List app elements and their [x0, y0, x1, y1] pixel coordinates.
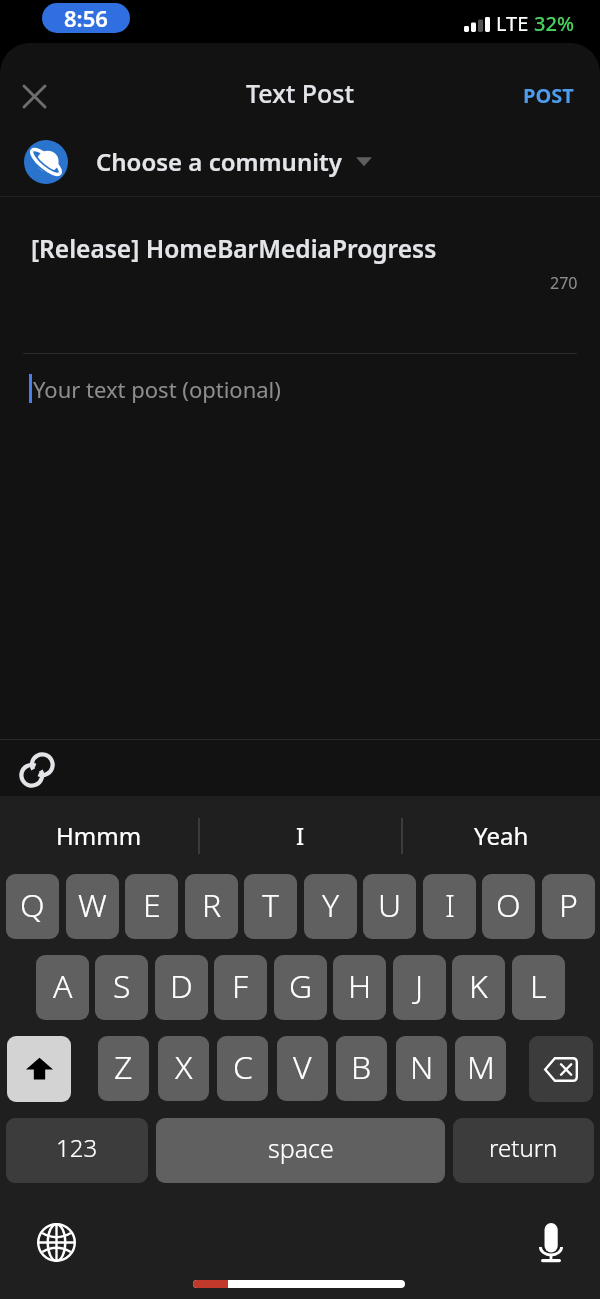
button[interactable]: C — [217, 1036, 268, 1101]
staticText: W — [78, 883, 107, 927]
button[interactable]: A — [36, 955, 89, 1020]
staticText: I — [445, 883, 455, 927]
button[interactable]: G — [274, 955, 327, 1020]
button[interactable]: K — [452, 955, 505, 1020]
staticText: LTE — [496, 10, 529, 37]
button[interactable]: I — [423, 874, 476, 939]
staticText: Z — [114, 1045, 133, 1089]
staticText: M — [467, 1045, 495, 1089]
button[interactable]: Dictation — [528, 1220, 574, 1266]
button[interactable]: X — [158, 1036, 209, 1101]
button[interactable]: Shift — [7, 1036, 71, 1102]
button[interactable]: R — [185, 874, 238, 939]
staticText: T — [262, 883, 279, 927]
button[interactable]: O — [482, 874, 535, 939]
staticText: X — [175, 1045, 193, 1089]
button[interactable]: T — [244, 874, 297, 939]
staticText: V — [293, 1045, 312, 1089]
staticText: H — [348, 964, 372, 1008]
staticText: G — [289, 964, 313, 1008]
button[interactable]: Close — [10, 71, 59, 120]
staticText: [Release] HomeBarMediaProgress — [31, 232, 437, 265]
staticText: I — [296, 819, 305, 852]
staticText: U — [378, 883, 402, 927]
staticText: Yeah — [474, 819, 529, 852]
button[interactable]: F — [214, 955, 267, 1020]
button[interactable]: V — [277, 1036, 328, 1101]
button[interactable]: S — [95, 955, 148, 1020]
button[interactable]: L — [512, 955, 565, 1020]
button[interactable]: Insert link — [15, 748, 59, 792]
staticText: A — [53, 964, 73, 1008]
staticText: space — [268, 1131, 334, 1165]
button[interactable]: 123 — [6, 1118, 148, 1183]
staticText: POST — [523, 82, 574, 109]
button[interactable]: Yeah — [402, 796, 600, 874]
staticText: J — [415, 964, 424, 1008]
staticText: Choose a community — [96, 145, 342, 178]
button[interactable]: W — [66, 874, 119, 939]
staticText: C — [233, 1045, 253, 1089]
button[interactable]: POST — [519, 76, 578, 115]
button[interactable]: P — [542, 874, 595, 939]
staticText: L — [530, 964, 547, 1008]
staticText: 8:56 — [64, 3, 108, 33]
button[interactable]: space — [156, 1118, 445, 1183]
button[interactable]: N — [396, 1036, 447, 1101]
button[interactable]: Q — [6, 874, 59, 939]
button[interactable]: D — [155, 955, 208, 1020]
staticText: S — [113, 964, 131, 1008]
staticText: B — [351, 1045, 372, 1089]
button[interactable]: Change keyboard — [33, 1219, 79, 1265]
button[interactable]: Backspace — [529, 1036, 593, 1102]
staticText: D — [170, 964, 193, 1008]
staticText: R — [202, 883, 222, 927]
button[interactable]: Choose a community — [0, 129, 600, 194]
staticText: O — [496, 883, 521, 927]
staticText: P — [559, 883, 578, 927]
button[interactable]: M — [455, 1036, 506, 1101]
button[interactable]: H — [333, 955, 386, 1020]
button[interactable]: Hmmm — [0, 796, 198, 874]
staticText: 123 — [56, 1131, 98, 1164]
button[interactable]: Z — [98, 1036, 149, 1101]
staticText: Q — [20, 883, 45, 927]
staticText: 270 — [550, 272, 578, 294]
staticText: N — [410, 1045, 434, 1089]
button[interactable]: return — [453, 1118, 594, 1183]
staticText: Text Post — [246, 76, 355, 110]
staticText: Your text post (optional) — [33, 374, 281, 404]
button[interactable]: J — [393, 955, 446, 1020]
staticText: return — [489, 1131, 558, 1164]
staticText: K — [469, 964, 488, 1008]
button[interactable]: U — [363, 874, 416, 939]
staticText: F — [232, 964, 249, 1008]
staticText: 32% — [534, 10, 574, 37]
button[interactable]: I — [200, 796, 400, 874]
button[interactable]: E — [125, 874, 178, 939]
staticText: E — [143, 883, 161, 927]
button[interactable]: B — [336, 1036, 387, 1101]
button[interactable]: Y — [304, 874, 357, 939]
staticText: Y — [322, 883, 340, 927]
staticText: Hmmm — [56, 819, 142, 852]
